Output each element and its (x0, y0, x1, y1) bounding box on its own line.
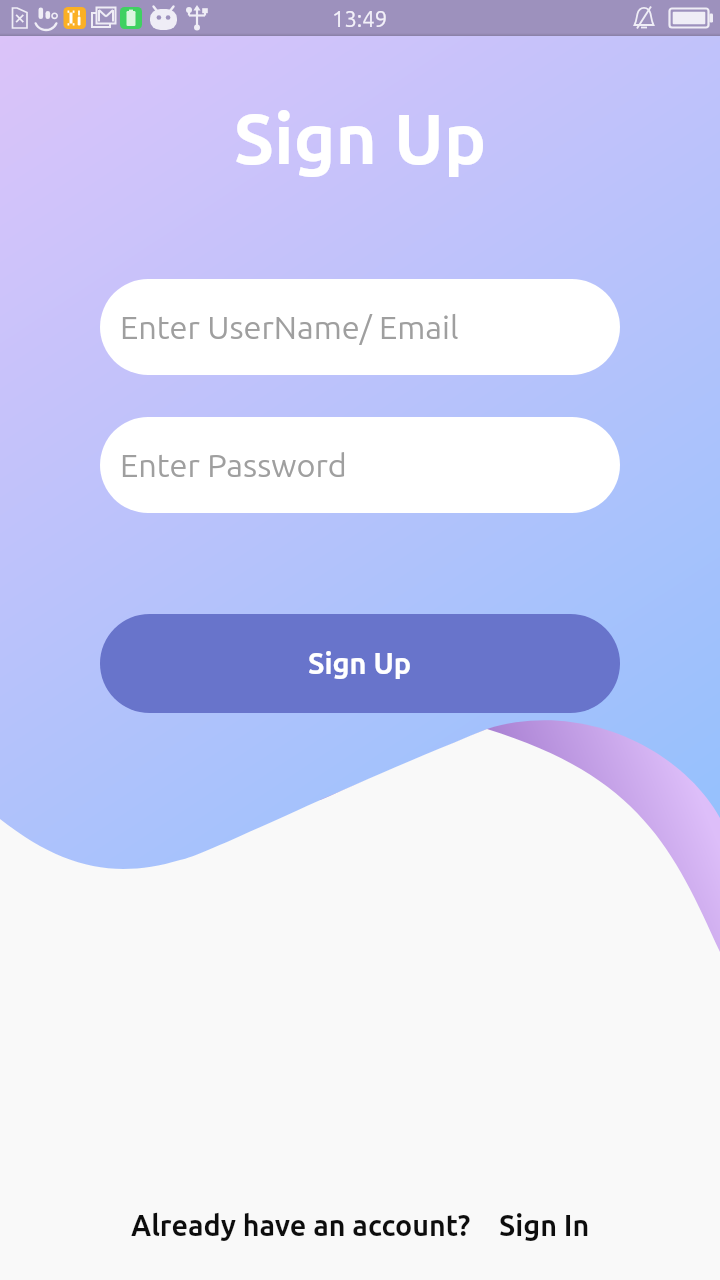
button[interactable]: Sign In (499, 1209, 590, 1241)
button[interactable]: Enter UserName/ Email (100, 279, 620, 375)
staticText: Sign Up (308, 647, 412, 680)
staticText: Sign Up (0, 98, 720, 178)
staticText: 13:49 (332, 6, 388, 31)
staticText: Sign In (499, 1209, 590, 1241)
button[interactable]: Sign Up (100, 614, 620, 713)
staticText: Enter Password (120, 447, 347, 483)
staticText: Enter UserName/ Email (120, 309, 459, 345)
button[interactable]: Enter Password (100, 417, 620, 513)
staticText: Already have an account? (131, 1209, 471, 1241)
